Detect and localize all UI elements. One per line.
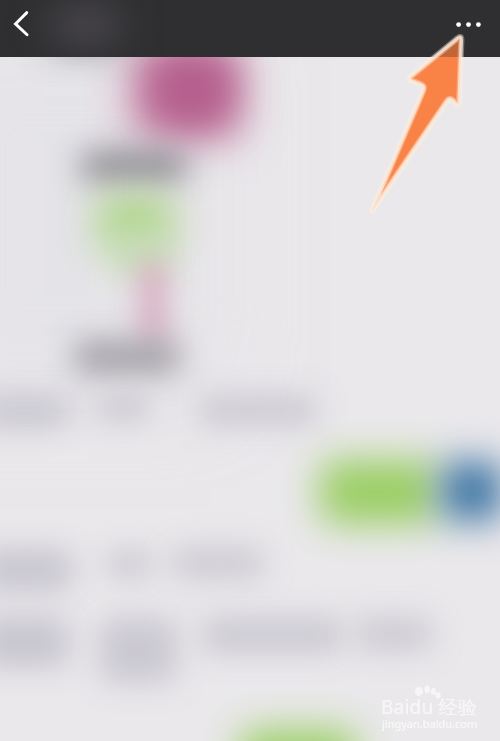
button[interactable]: More options <box>452 0 500 57</box>
staticText: Baidu 经验 <box>381 694 477 720</box>
staticText: jingyan.baidu.com <box>382 716 478 731</box>
button[interactable]: Back <box>0 0 46 57</box>
